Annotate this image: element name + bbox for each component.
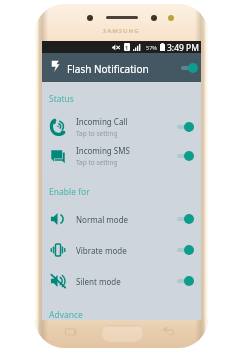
button[interactable]: Flash xyxy=(51,60,60,72)
button[interactable]: Back xyxy=(161,327,175,336)
staticText: SAMSUNG xyxy=(103,27,140,34)
button[interactable]: Normal mode xyxy=(42,206,201,232)
staticText: Incoming SMS xyxy=(76,145,130,156)
staticText: Tap to setting xyxy=(76,158,118,167)
staticText: 1 xyxy=(125,44,129,51)
button[interactable]: Toggle xyxy=(177,275,194,287)
staticText: Silent mode xyxy=(76,276,121,287)
staticText: Tap to setting xyxy=(76,129,118,138)
staticText: 3:49 PM xyxy=(167,42,199,54)
button[interactable]: Toggle xyxy=(177,213,194,225)
button[interactable]: Toggle xyxy=(181,62,198,74)
button[interactable]: Home xyxy=(102,325,143,342)
button[interactable]: Toggle xyxy=(177,150,194,162)
staticText: Vibrate mode xyxy=(76,245,127,256)
staticText: Status xyxy=(49,93,74,105)
staticText: Enable for xyxy=(49,186,90,198)
button[interactable]: Toggle xyxy=(177,121,194,133)
staticText: Normal mode xyxy=(76,214,129,225)
staticText: Advance xyxy=(49,309,83,321)
staticText: 57% xyxy=(146,44,157,51)
staticText: Incoming Call xyxy=(76,116,128,127)
button[interactable]: Toggle xyxy=(177,244,194,256)
staticText: Flash Notification xyxy=(67,62,149,76)
button[interactable]: Vibrate mode xyxy=(42,237,201,263)
button[interactable]: Incoming SMS xyxy=(42,143,201,169)
button[interactable]: Incoming Call xyxy=(42,114,201,140)
button[interactable]: Recent apps xyxy=(64,327,77,337)
button[interactable]: Silent mode xyxy=(42,268,201,294)
